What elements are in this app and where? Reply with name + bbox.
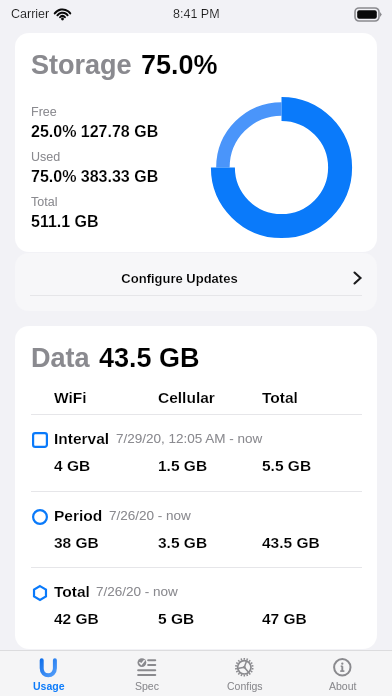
staticText: 42 GB: [54, 610, 99, 627]
staticText: 5.5 GB: [262, 457, 312, 474]
staticText: Cellular: [158, 389, 215, 406]
staticText: 47 GB: [262, 610, 307, 627]
staticText: 8:41 PM: [173, 7, 220, 21]
staticText: 43.5 GB: [262, 534, 320, 551]
staticText: 43.5 GB: [99, 343, 200, 373]
staticText: 7/29/20, 12:05 AM - now: [116, 431, 263, 446]
button[interactable]: Interval: [15, 414, 377, 490]
button[interactable]: Configure Updates: [15, 253, 377, 311]
button[interactable]: Spec: [98, 651, 196, 696]
staticText: 1.5 GB: [158, 457, 208, 474]
staticText: Configs: [227, 680, 263, 692]
staticText: 5 GB: [158, 610, 195, 627]
staticText: Period: [54, 507, 103, 524]
button[interactable]: Period: [15, 491, 377, 567]
button[interactable]: Usage: [0, 651, 98, 696]
staticText: 75.0% 383.33 GB: [31, 168, 159, 186]
staticText: Total: [54, 583, 90, 600]
staticText: Data: [31, 343, 90, 373]
staticText: WiFi: [54, 389, 87, 406]
staticText: 7/26/20 - now: [109, 508, 191, 523]
staticText: 25.0% 127.78 GB: [31, 123, 159, 141]
staticText: Configure Updates: [15, 271, 344, 286]
staticText: 75.0%: [141, 50, 218, 80]
staticText: Carrier: [11, 7, 50, 21]
staticText: Free: [31, 105, 57, 119]
button[interactable]: Configs: [196, 651, 294, 696]
staticText: Used: [31, 150, 61, 164]
staticText: 38 GB: [54, 534, 99, 551]
staticText: Total: [31, 195, 58, 209]
staticText: 3.5 GB: [158, 534, 208, 551]
staticText: Total: [262, 389, 298, 406]
staticText: 7/26/20 - now: [96, 584, 178, 599]
staticText: About: [329, 680, 357, 692]
staticText: Spec: [135, 680, 159, 692]
staticText: Interval: [54, 430, 110, 447]
button[interactable]: About: [294, 651, 392, 696]
staticText: 511.1 GB: [31, 213, 99, 231]
staticText: Storage: [31, 50, 132, 80]
staticText: 4 GB: [54, 457, 91, 474]
button[interactable]: Total: [15, 567, 377, 643]
staticText: Usage: [33, 680, 65, 692]
